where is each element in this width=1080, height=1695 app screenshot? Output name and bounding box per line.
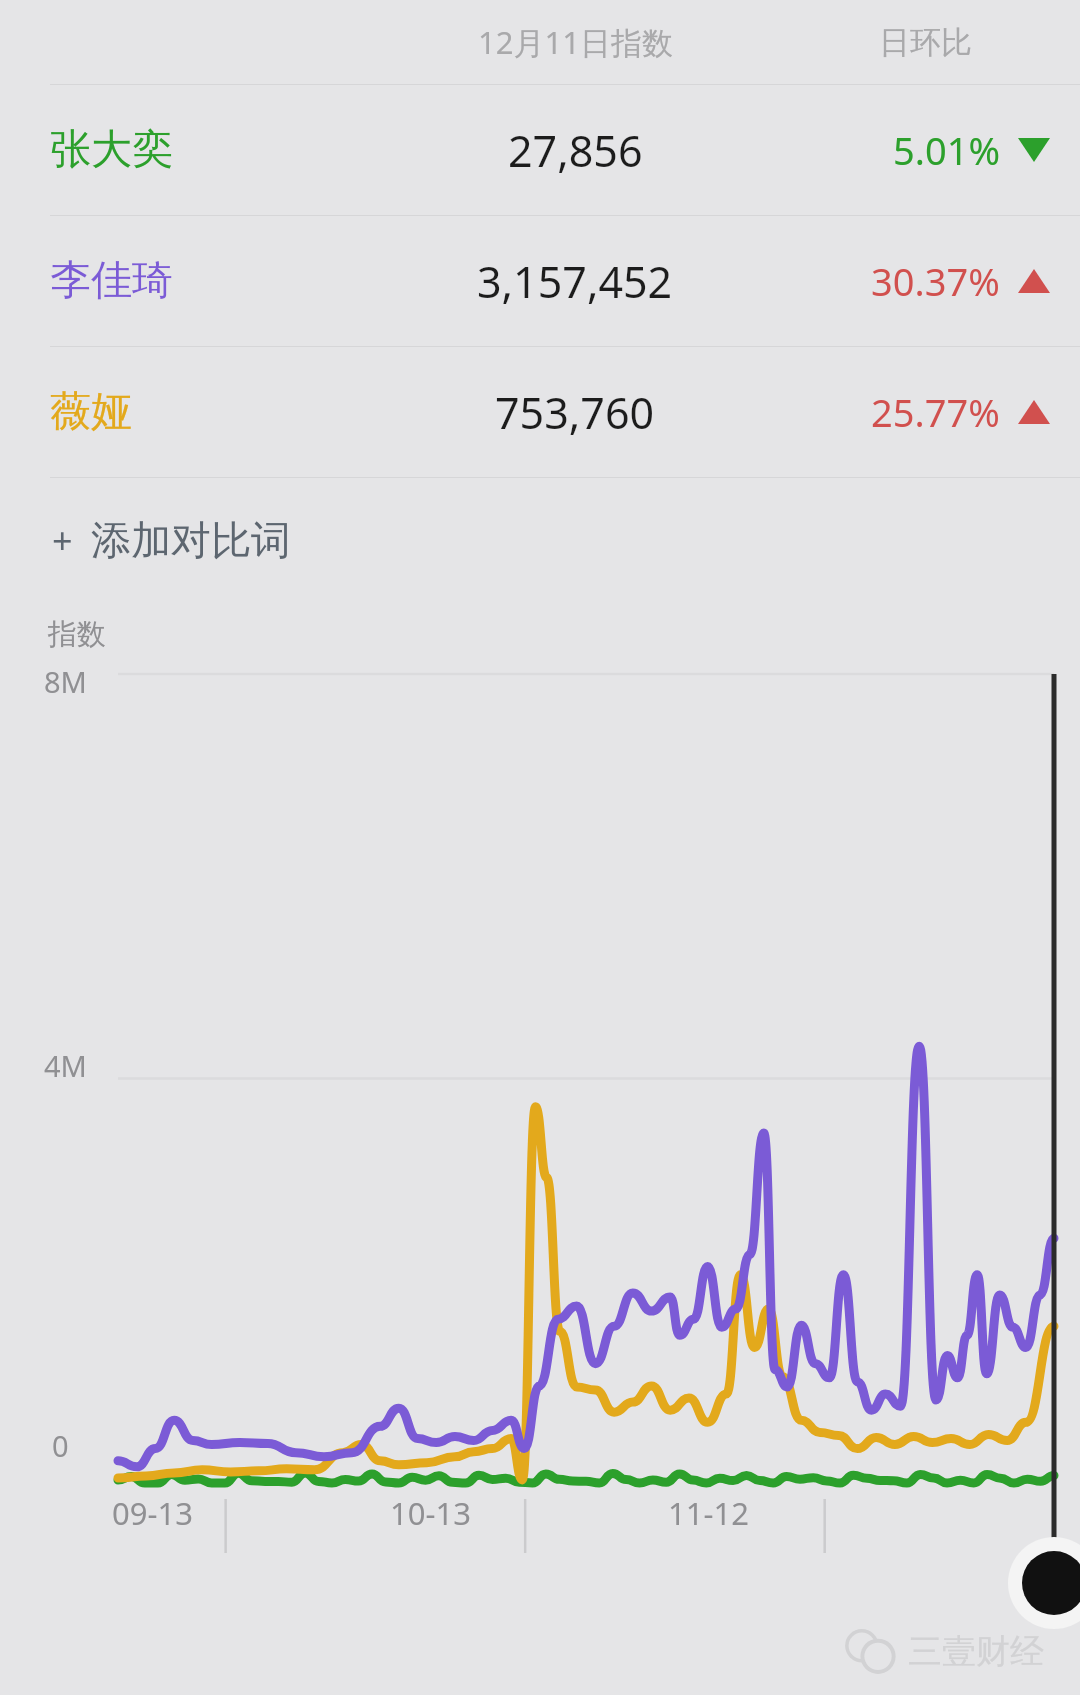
staticText: 添加对比词 bbox=[91, 515, 291, 565]
staticText: 30.37% bbox=[871, 255, 1000, 307]
staticText: 4M bbox=[44, 1046, 87, 1085]
button[interactable]: 张大奕 bbox=[0, 85, 1080, 215]
staticText: 3,157,452 bbox=[477, 252, 673, 311]
staticText: 753,760 bbox=[495, 383, 655, 442]
staticText: 李佳琦 bbox=[50, 255, 173, 307]
staticText: 指数 bbox=[48, 616, 106, 653]
button[interactable]: 薇娅 bbox=[0, 347, 1080, 477]
staticText: 27,856 bbox=[508, 121, 643, 180]
staticText: 09-13 bbox=[112, 1492, 193, 1534]
staticText: 张大奕 bbox=[50, 124, 173, 176]
staticText: + bbox=[52, 516, 73, 565]
staticText: 5.01% bbox=[893, 124, 1000, 176]
staticText: 12月11日指数 bbox=[478, 21, 673, 63]
staticText: 三壹财经 bbox=[908, 1630, 1044, 1673]
other: Increase bbox=[1018, 400, 1050, 424]
button[interactable]: + bbox=[0, 478, 1080, 602]
staticText: 10-13 bbox=[390, 1492, 471, 1534]
other: Decrease bbox=[1018, 138, 1050, 162]
other: Increase bbox=[1018, 269, 1050, 293]
staticText: 11-12 bbox=[668, 1492, 749, 1534]
button[interactable]: 李佳琦 bbox=[0, 216, 1080, 346]
staticText: 日环比 bbox=[879, 23, 972, 62]
staticText: 薇娅 bbox=[50, 386, 132, 438]
staticText: 0 bbox=[52, 1426, 69, 1465]
staticText: 8M bbox=[44, 662, 87, 701]
staticText: 25.77% bbox=[871, 386, 1000, 438]
